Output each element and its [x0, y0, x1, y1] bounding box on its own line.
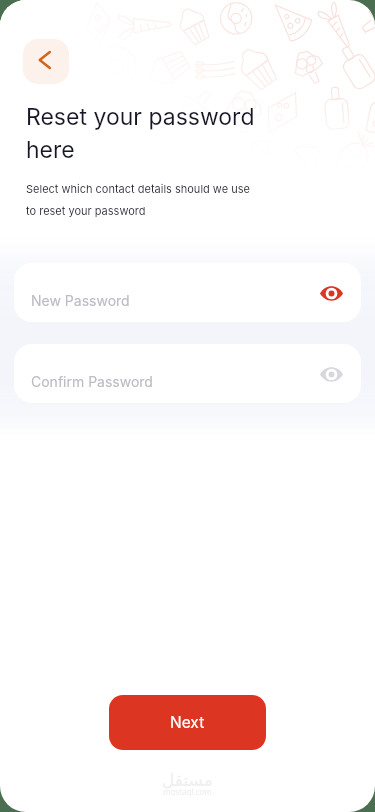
staticText: mostaql.com	[163, 786, 212, 797]
button[interactable]: Confirm Password	[14, 344, 361, 403]
staticText: New Password	[31, 292, 130, 309]
staticText: مستقل	[162, 770, 213, 790]
button[interactable]: New Password	[14, 263, 361, 322]
button[interactable]: Toggle password visibility	[315, 277, 347, 309]
button[interactable]: Toggle password visibility	[315, 358, 347, 390]
staticText: Confirm Password	[31, 373, 153, 390]
button[interactable]: Next	[109, 695, 266, 750]
staticText: Next	[170, 713, 205, 732]
staticText: Select which contact details should we u…	[26, 182, 250, 217]
staticText: Reset your password here	[26, 103, 255, 164]
button[interactable]: Back	[23, 39, 69, 84]
